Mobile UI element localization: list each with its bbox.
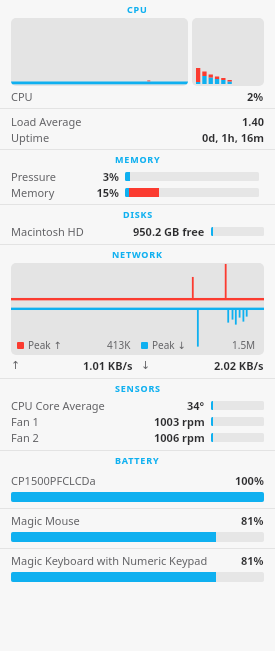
button[interactable]: Magic Mouse: [0, 509, 275, 548]
staticText: ↓: [141, 359, 151, 372]
staticText: Peak ↑: [28, 338, 62, 352]
button[interactable]: Uptime: [0, 129, 275, 145]
button[interactable]: ↑: [0, 355, 275, 375]
staticText: 34°: [187, 398, 205, 413]
staticText: 2.02 KB/s: [214, 358, 264, 373]
staticText: DISKS: [123, 208, 153, 220]
button[interactable]: [11, 18, 188, 86]
staticText: 1006 rpm: [154, 430, 205, 445]
staticText: Peak ↓: [152, 338, 186, 352]
staticText: 413K: [107, 338, 131, 352]
staticText: BATTERY: [115, 454, 160, 466]
button[interactable]: Load Average: [0, 113, 275, 129]
staticText: 1.40: [242, 114, 264, 129]
staticText: 81%: [241, 513, 264, 528]
button[interactable]: Fan 1: [0, 413, 275, 429]
staticText: SENSORS: [115, 382, 161, 394]
staticText: CPU Core Average: [11, 398, 105, 413]
staticText: 1003 rpm: [154, 414, 205, 429]
button[interactable]: Macintosh HD: [0, 223, 275, 239]
staticText: 15%: [71, 185, 119, 200]
staticText: 950.2 GB free: [133, 224, 205, 239]
staticText: ↑: [11, 359, 21, 372]
button[interactable]: Peak ↑: [11, 263, 264, 355]
staticText: Memory: [11, 185, 71, 200]
staticText: 2%: [247, 89, 264, 104]
button[interactable]: CPU: [0, 88, 275, 104]
staticText: 3%: [71, 169, 119, 184]
staticText: 1.01 KB/s: [83, 358, 133, 373]
staticText: Magic Keyboard with Numeric Keypad: [11, 553, 208, 568]
staticText: CPU: [11, 89, 33, 104]
button[interactable]: CPU Core Average: [0, 397, 275, 413]
staticText: 100%: [235, 473, 264, 488]
staticText: Load Average: [11, 114, 82, 129]
staticText: 81%: [241, 553, 264, 568]
staticText: 0d, 1h, 16m: [202, 130, 264, 145]
button[interactable]: Fan 2: [0, 429, 275, 445]
button[interactable]: Memory: [0, 184, 275, 200]
staticText: 1.5M: [232, 338, 256, 352]
staticText: Pressure: [11, 169, 71, 184]
staticText: MEMORY: [115, 153, 161, 165]
staticText: Fan 1: [11, 414, 39, 429]
staticText: Fan 2: [11, 430, 39, 445]
button[interactable]: [192, 18, 264, 86]
staticText: Macintosh HD: [11, 224, 84, 239]
staticText: Uptime: [11, 130, 50, 145]
staticText: NETWORK: [112, 248, 163, 260]
staticText: CP1500PFCLCDa: [11, 473, 96, 488]
staticText: CPU: [127, 3, 148, 15]
button[interactable]: Magic Keyboard with Numeric Keypad: [0, 549, 275, 588]
button[interactable]: Pressure: [0, 168, 275, 184]
staticText: Magic Mouse: [11, 513, 80, 528]
button[interactable]: CP1500PFCLCDa: [0, 469, 275, 508]
